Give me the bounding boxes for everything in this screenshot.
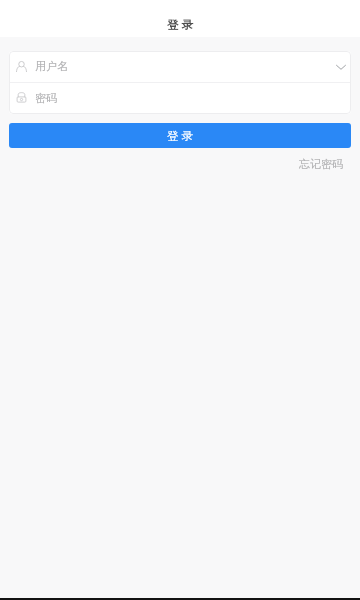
staticText: 密码 (35, 91, 57, 105)
button[interactable]: User name (9, 51, 351, 82)
button[interactable]: Show saved accounts (329, 53, 351, 79)
staticText: 忘记密码 (299, 157, 343, 171)
staticText: 登 录 (167, 128, 193, 144)
other: User name (16, 61, 27, 72)
button[interactable]: 登 录 (9, 123, 351, 148)
staticText: 用户名 (35, 59, 68, 73)
other: Password (16, 91, 27, 103)
button[interactable]: Password (9, 83, 351, 114)
staticText: 登 录 (167, 17, 193, 33)
button[interactable]: 忘记密码 (282, 155, 360, 173)
